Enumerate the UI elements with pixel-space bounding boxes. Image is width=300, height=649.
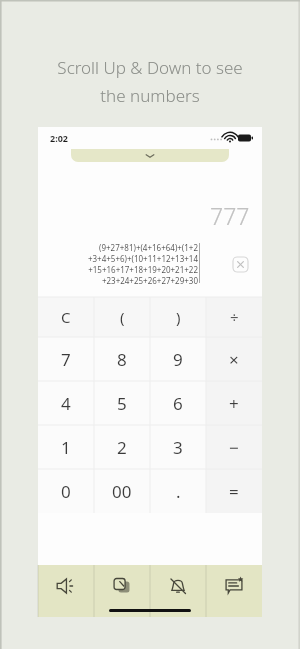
staticText: 2:02 [50, 132, 68, 144]
staticText: +15+16+17+18+19+20+21+22 [88, 264, 198, 275]
button[interactable]: + [206, 381, 262, 425]
button[interactable]: 00 [94, 469, 150, 513]
staticText: +3+4+5+6)+(10+11+12+13+14 [87, 253, 198, 264]
staticText: 9 [173, 348, 183, 371]
button[interactable]: Copy [94, 565, 150, 617]
staticText: Scroll Up & Down to see [57, 56, 243, 79]
staticText: 8 [117, 348, 127, 371]
staticText: ÷ [230, 307, 239, 327]
button[interactable]: × [206, 337, 262, 381]
staticText: +23+24+25+26+27+29+30 [101, 275, 198, 286]
staticText: ( [120, 307, 125, 327]
staticText: 6 [173, 392, 183, 415]
button[interactable]: 5 [94, 381, 150, 425]
staticText: 1 [61, 436, 71, 459]
button[interactable]: 4 [38, 381, 94, 425]
staticText: 5 [117, 392, 127, 415]
button[interactable]: C [38, 297, 94, 337]
button[interactable]: 3 [150, 425, 206, 469]
button[interactable]: Mute notifications [150, 565, 206, 617]
staticText: 2 [117, 436, 127, 459]
staticText: × [229, 348, 239, 371]
button[interactable] [71, 149, 229, 162]
staticText: − [229, 436, 239, 459]
button[interactable]: = [206, 469, 262, 513]
staticText: (9+27+81)+(4+16+64)+(1+2 [99, 242, 198, 253]
staticText: 00 [112, 480, 132, 503]
button[interactable]: . [150, 469, 206, 513]
staticText: + [229, 392, 239, 415]
staticText: 0 [61, 480, 71, 503]
button[interactable]: 6 [150, 381, 206, 425]
staticText: C [61, 307, 71, 327]
staticText: 777 [210, 200, 250, 231]
staticText: the numbers [100, 84, 200, 107]
button[interactable]: 2 [94, 425, 150, 469]
staticText: 4 [61, 392, 71, 415]
staticText: 3 [173, 436, 183, 459]
button[interactable]: 9 [150, 337, 206, 381]
button[interactable]: 0 [38, 469, 94, 513]
button[interactable]: ÷ [206, 297, 262, 337]
button[interactable]: Volume [38, 565, 94, 617]
button[interactable]: Notes [206, 565, 262, 617]
staticText: . [176, 480, 181, 503]
staticText: ) [176, 307, 181, 327]
button[interactable]: ( [94, 297, 150, 337]
button[interactable]: ) [150, 297, 206, 337]
button[interactable]: 8 [94, 337, 150, 381]
button[interactable]: 1 [38, 425, 94, 469]
button[interactable]: − [206, 425, 262, 469]
staticText: 7 [61, 348, 71, 371]
button[interactable]: 7 [38, 337, 94, 381]
staticText: = [229, 480, 239, 503]
button[interactable]: Clear [232, 256, 249, 273]
